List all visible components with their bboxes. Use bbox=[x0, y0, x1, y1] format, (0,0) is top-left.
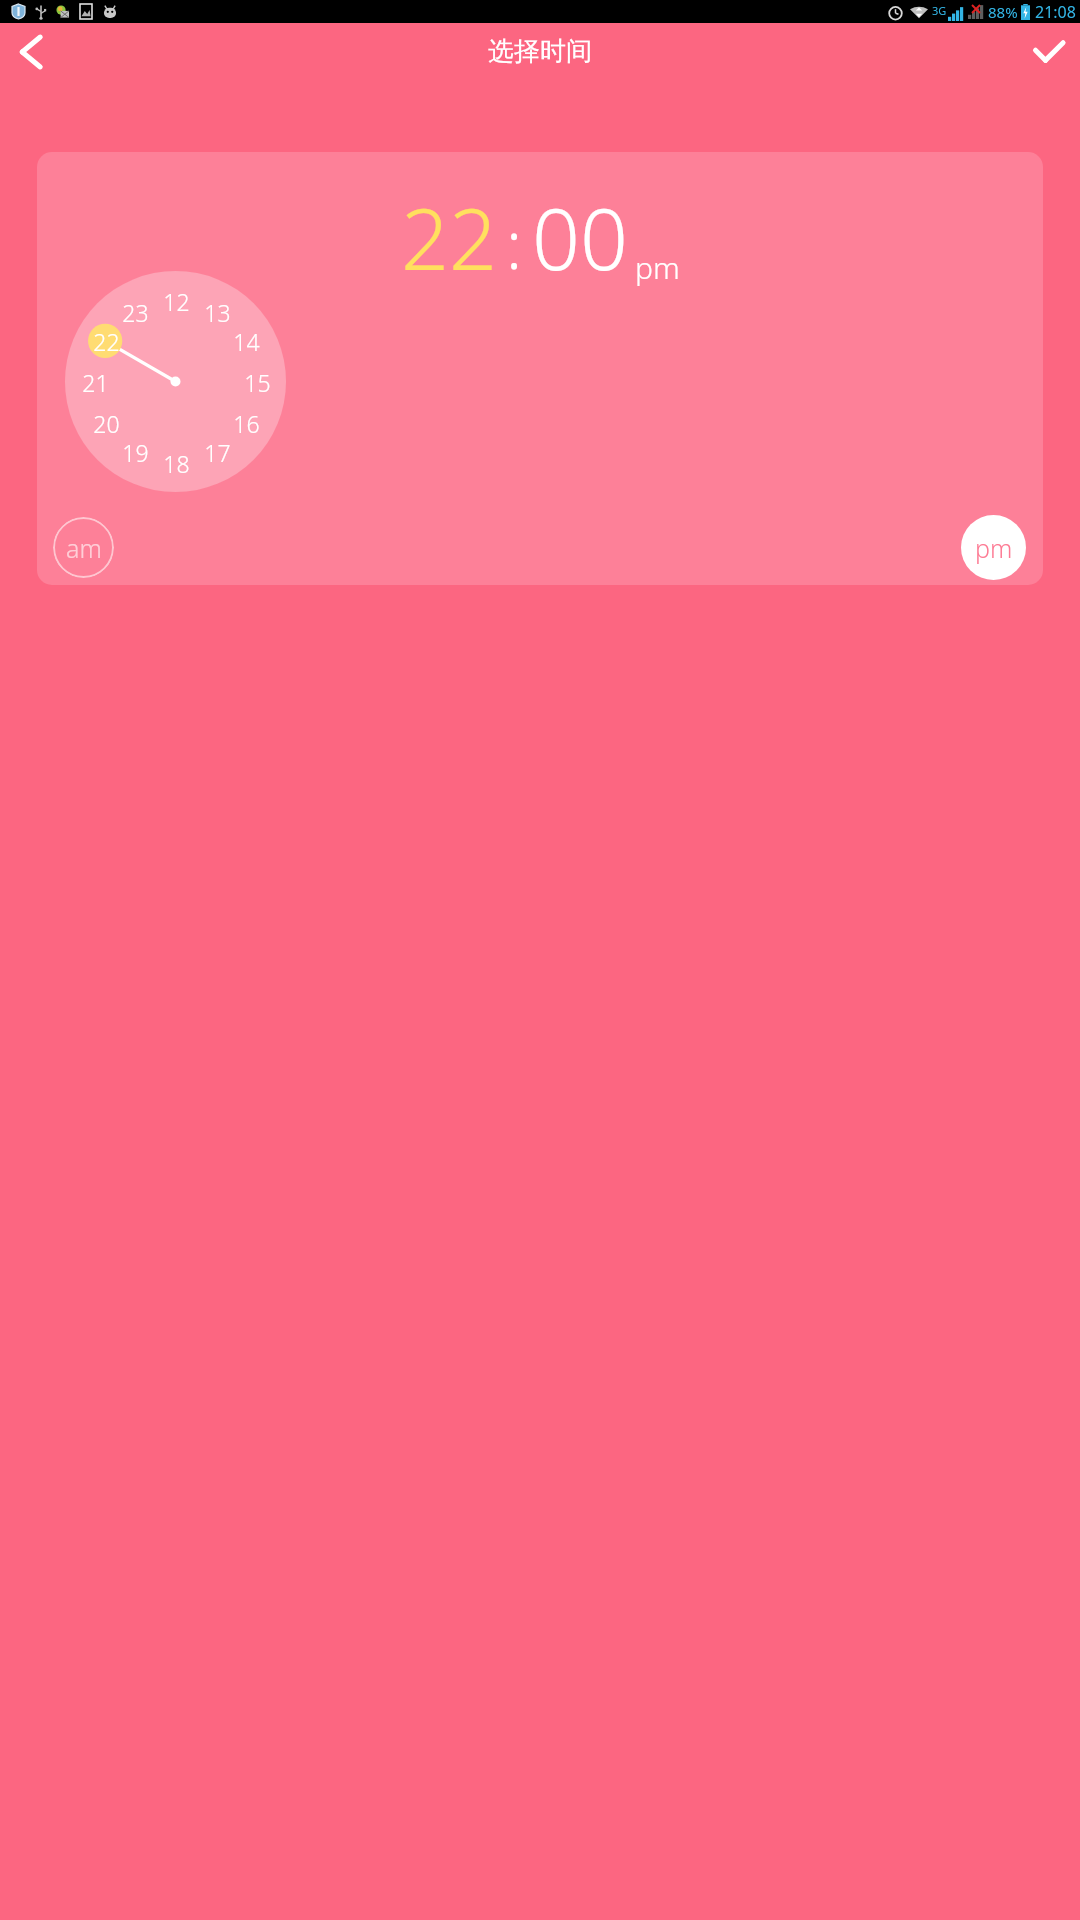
staticText: pm bbox=[975, 531, 1013, 565]
button[interactable]: 22 bbox=[401, 180, 680, 294]
staticText: 17 bbox=[204, 437, 231, 468]
button[interactable]: 23 bbox=[115, 292, 155, 332]
staticText: 15 bbox=[244, 367, 271, 398]
button[interactable]: 18 bbox=[156, 443, 196, 483]
staticText: am bbox=[66, 531, 102, 565]
staticText: 22 bbox=[93, 326, 120, 357]
staticText: 12 bbox=[163, 286, 190, 317]
staticText: 21 bbox=[82, 367, 109, 398]
button[interactable]: 21 bbox=[75, 362, 115, 402]
staticText: 选择时间 bbox=[488, 35, 592, 68]
button[interactable]: 20 bbox=[86, 403, 126, 443]
staticText: 22 bbox=[401, 180, 497, 294]
button[interactable]: pm bbox=[961, 515, 1026, 580]
staticText: 3G bbox=[932, 3, 947, 18]
staticText: 19 bbox=[122, 437, 149, 468]
staticText: 16 bbox=[233, 408, 260, 439]
staticText: 23 bbox=[122, 297, 149, 328]
staticText: 00 bbox=[532, 180, 628, 294]
staticText: 21:08 bbox=[1035, 1, 1076, 23]
staticText: 13 bbox=[204, 297, 231, 328]
staticText: 20 bbox=[93, 408, 120, 439]
button[interactable]: 14 bbox=[226, 321, 266, 361]
staticText: pm bbox=[635, 247, 680, 288]
staticText: : bbox=[506, 198, 523, 288]
button[interactable]: 22 bbox=[86, 321, 126, 361]
button[interactable]: 17 bbox=[197, 432, 237, 472]
button[interactable]: 13 bbox=[197, 292, 237, 332]
staticText: 14 bbox=[233, 326, 260, 357]
button[interactable]: am bbox=[53, 517, 114, 578]
button[interactable]: 19 bbox=[115, 432, 155, 472]
staticText: 88% bbox=[988, 2, 1018, 22]
button[interactable]: Back bbox=[0, 23, 62, 80]
button[interactable]: Confirm bbox=[1018, 23, 1080, 80]
staticText: 18 bbox=[163, 448, 190, 479]
button[interactable]: 15 bbox=[237, 362, 277, 402]
button[interactable]: 12 bbox=[156, 281, 196, 321]
button[interactable]: 16 bbox=[226, 403, 266, 443]
